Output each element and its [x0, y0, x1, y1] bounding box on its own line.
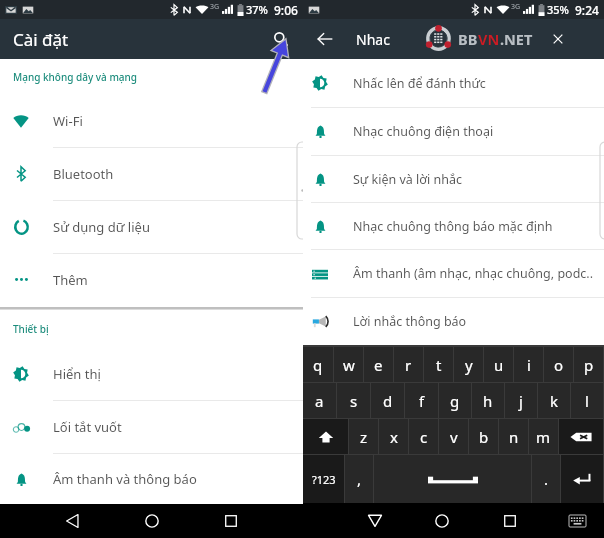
staticText: 3G: [210, 2, 220, 12]
button[interactable]: ,: [345, 455, 373, 503]
button[interactable]: i: [514, 347, 543, 382]
button[interactable]: Home: [424, 503, 460, 538]
staticText: h: [483, 391, 493, 411]
button[interactable]: d: [371, 383, 404, 418]
button[interactable]: Enter: [561, 455, 603, 503]
staticText: e: [374, 355, 383, 375]
button[interactable]: Space: [374, 455, 531, 503]
staticText: Mạng không dây và mạng: [13, 70, 138, 84]
staticText: p: [584, 355, 594, 375]
button[interactable]: k: [538, 383, 570, 418]
button[interactable]: x: [379, 419, 408, 454]
button[interactable]: h: [472, 383, 504, 418]
staticText: v: [450, 427, 458, 447]
staticText: u: [494, 355, 504, 375]
button[interactable]: Nhạc chuông thông báo mặc định: [303, 203, 604, 249]
staticText: Âm thanh và thông báo: [53, 470, 197, 488]
staticText: Thêm: [53, 271, 88, 289]
button[interactable]: a: [303, 383, 336, 418]
button[interactable]: Âm thanh (âm nhạc, nhạc chuông, podc..: [303, 250, 604, 297]
staticText: Hiển thị: [53, 365, 101, 383]
button[interactable]: Âm thanh và thông báo: [0, 454, 303, 504]
button[interactable]: f: [405, 383, 438, 418]
button[interactable]: Close: [544, 25, 572, 53]
staticText: Lối tắt vuốt: [53, 418, 122, 436]
button[interactable]: c: [409, 419, 438, 454]
button[interactable]: Backspace: [559, 419, 603, 454]
staticText: s: [350, 391, 358, 411]
staticText: BB: [458, 29, 478, 49]
staticText: Bluetooth: [53, 165, 114, 183]
button[interactable]: b: [469, 419, 498, 454]
button[interactable]: Wi-Fi: [0, 95, 303, 147]
staticText: Âm thanh (âm nhạc, nhạc chuông, podc..: [353, 265, 594, 282]
button[interactable]: p: [574, 347, 603, 382]
button[interactable]: n: [499, 419, 528, 454]
button[interactable]: y: [454, 347, 483, 382]
button[interactable]: Search: [268, 26, 294, 52]
staticText: 3G: [511, 2, 521, 12]
button[interactable]: Back: [52, 504, 92, 538]
button[interactable]: e: [364, 347, 393, 382]
button[interactable]: Sự kiện và lời nhắc: [303, 156, 604, 202]
staticText: f: [419, 391, 425, 411]
staticText: l: [585, 391, 589, 411]
staticText: z: [360, 427, 368, 447]
button[interactable]: s: [337, 383, 370, 418]
staticText: w: [343, 355, 355, 375]
button[interactable]: Lối tắt vuốt: [0, 401, 303, 453]
staticText: j: [519, 391, 523, 411]
staticText: Sự kiện và lời nhắc: [353, 171, 462, 188]
button[interactable]: Lời nhắc thông báo: [303, 298, 604, 345]
staticText: 35%: [547, 2, 569, 17]
staticText: t: [436, 355, 442, 375]
button[interactable]: Switch keyboard: [559, 503, 595, 538]
staticText: m: [536, 427, 551, 447]
button[interactable]: l: [571, 383, 603, 418]
staticText: Sử dụng dữ liệu: [53, 218, 150, 236]
button[interactable]: m: [529, 419, 558, 454]
button[interactable]: Nhạc chuông điện thoại: [303, 108, 604, 155]
button[interactable]: Hiển thị: [0, 348, 303, 400]
button[interactable]: Recents: [211, 504, 251, 538]
button[interactable]: Shift: [303, 419, 348, 454]
staticText: d: [383, 391, 393, 411]
button[interactable]: ?123: [303, 455, 344, 503]
button[interactable]: .: [532, 455, 560, 503]
staticText: .NET: [500, 29, 533, 49]
button[interactable]: o: [544, 347, 573, 382]
button[interactable]: Recents: [492, 503, 528, 538]
button[interactable]: Nhấc lên để đánh thức: [303, 59, 604, 107]
button[interactable]: j: [505, 383, 537, 418]
button[interactable]: q: [303, 347, 333, 382]
button[interactable]: t: [424, 347, 453, 382]
staticText: Nhấc lên để đánh thức: [353, 75, 486, 92]
staticText: a: [315, 391, 324, 411]
button[interactable]: Back: [311, 25, 339, 53]
staticText: .: [544, 469, 549, 489]
staticText: 9:24: [575, 2, 599, 18]
button[interactable]: Sử dụng dữ liệu: [0, 201, 303, 253]
button[interactable]: u: [484, 347, 513, 382]
staticText: Wi-Fi: [53, 112, 83, 130]
staticText: q: [313, 355, 323, 375]
staticText: Nhac: [356, 30, 390, 49]
staticText: Nhạc chuông thông báo mặc định: [353, 218, 553, 235]
button[interactable]: Bluetooth: [0, 148, 303, 200]
button[interactable]: Hide keyboard: [357, 503, 393, 538]
staticText: 37%: [246, 2, 268, 17]
button[interactable]: v: [439, 419, 468, 454]
staticText: y: [465, 355, 473, 375]
staticText: Thiết bị: [13, 322, 49, 336]
button[interactable]: Thêm: [0, 254, 303, 305]
staticText: Cài đặt: [13, 28, 69, 51]
button[interactable]: z: [349, 419, 378, 454]
staticText: ?123: [312, 472, 336, 487]
button[interactable]: Home: [132, 504, 172, 538]
staticText: r: [405, 355, 412, 375]
staticText: k: [550, 391, 559, 411]
button[interactable]: g: [439, 383, 471, 418]
button[interactable]: w: [334, 347, 363, 382]
staticText: n: [509, 427, 519, 447]
button[interactable]: r: [394, 347, 423, 382]
